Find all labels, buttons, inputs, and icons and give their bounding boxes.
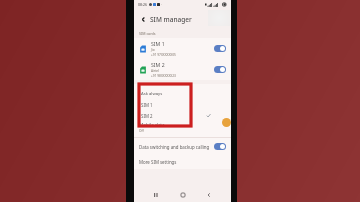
button[interactable]: More SIM settings (134, 155, 231, 169)
button[interactable]: Mobile data (134, 121, 231, 134)
button[interactable]: Data switching and backup calling (134, 138, 231, 155)
staticText: Ask always (141, 91, 163, 97)
button[interactable]: Notification badge (222, 118, 231, 127)
staticText: Jio (151, 48, 155, 52)
staticText: +91 97XXXXXX05 (151, 53, 176, 57)
button[interactable]: Ask always (134, 89, 231, 99)
staticText: SIM 1 (151, 40, 165, 47)
button[interactable]: SIM 1 (134, 38, 231, 59)
staticText: +91 98XXXXXX23 (151, 74, 176, 78)
staticText: Data switching and backup calling (139, 144, 210, 150)
button[interactable]: Home (178, 190, 188, 200)
button[interactable]: Toggle (214, 66, 226, 73)
staticText: 08:26 (138, 2, 147, 7)
button[interactable]: Back (204, 190, 214, 200)
button[interactable]: Toggle (214, 45, 226, 52)
staticText: Off (139, 129, 144, 133)
staticText: SIM manager (150, 15, 192, 24)
button[interactable]: Recents (151, 190, 161, 200)
staticText: · (161, 2, 162, 7)
staticText: More SIM settings (139, 159, 177, 165)
staticText: Airtel (151, 69, 159, 73)
button[interactable]: SIM 2 (134, 59, 231, 80)
button[interactable]: Back (138, 14, 148, 24)
staticText: Mobile data (139, 122, 165, 128)
staticText: SIM 1 (141, 102, 153, 108)
button[interactable]: SIM 1 (134, 99, 231, 110)
button[interactable]: SIM 2 (134, 110, 231, 121)
staticText: SIM 2 (151, 61, 165, 68)
staticText: SIM cards (139, 31, 156, 36)
staticText: SIM 2 (141, 113, 153, 119)
button[interactable]: Toggle (214, 143, 226, 150)
